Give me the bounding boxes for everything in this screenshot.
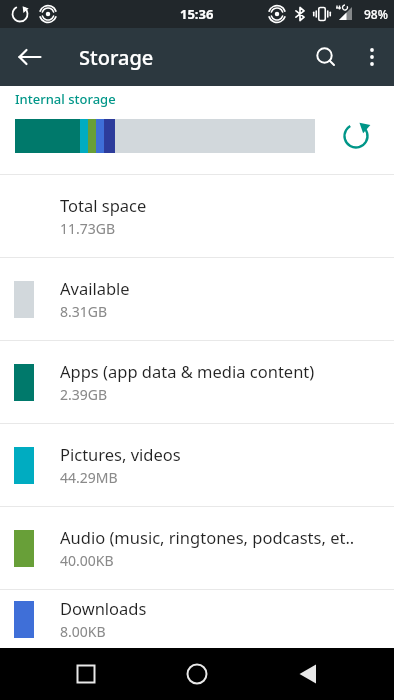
- staticText: Pictures, videos: [60, 443, 181, 465]
- staticText: 11.73GB: [60, 219, 116, 238]
- button[interactable]: Refresh: [332, 112, 380, 160]
- button[interactable]: Recent apps: [60, 648, 112, 700]
- staticText: Audio (music, ringtones, podcasts, et..: [60, 526, 355, 548]
- button[interactable]: Search: [302, 33, 350, 81]
- button[interactable]: Audio (music, ringtones, podcasts, et..: [0, 507, 394, 589]
- button[interactable]: Available: [0, 258, 394, 340]
- staticText: 2.39GB: [60, 385, 108, 404]
- button[interactable]: More options: [350, 35, 394, 79]
- staticText: Apps (app data & media content): [60, 360, 315, 382]
- staticText: Available: [60, 277, 130, 299]
- button[interactable]: Back: [283, 648, 335, 700]
- staticText: 98%: [364, 6, 388, 22]
- staticText: Storage: [79, 44, 154, 71]
- staticText: 40.00KB: [60, 551, 114, 570]
- staticText: 8.00KB: [60, 622, 106, 641]
- button[interactable]: Downloads: [0, 590, 394, 648]
- staticText: 15:36: [180, 5, 214, 23]
- button[interactable]: Apps (app data & media content): [0, 341, 394, 423]
- staticText: Downloads: [60, 597, 147, 619]
- button[interactable]: Home: [171, 648, 223, 700]
- button[interactable]: Back: [8, 35, 52, 79]
- button[interactable]: Pictures, videos: [0, 424, 394, 506]
- staticText: Total space: [60, 194, 147, 216]
- button[interactable]: Total space: [0, 175, 394, 257]
- staticText: Internal storage: [15, 90, 116, 108]
- staticText: 8.31GB: [60, 302, 108, 321]
- staticText: 44.29MB: [60, 468, 118, 487]
